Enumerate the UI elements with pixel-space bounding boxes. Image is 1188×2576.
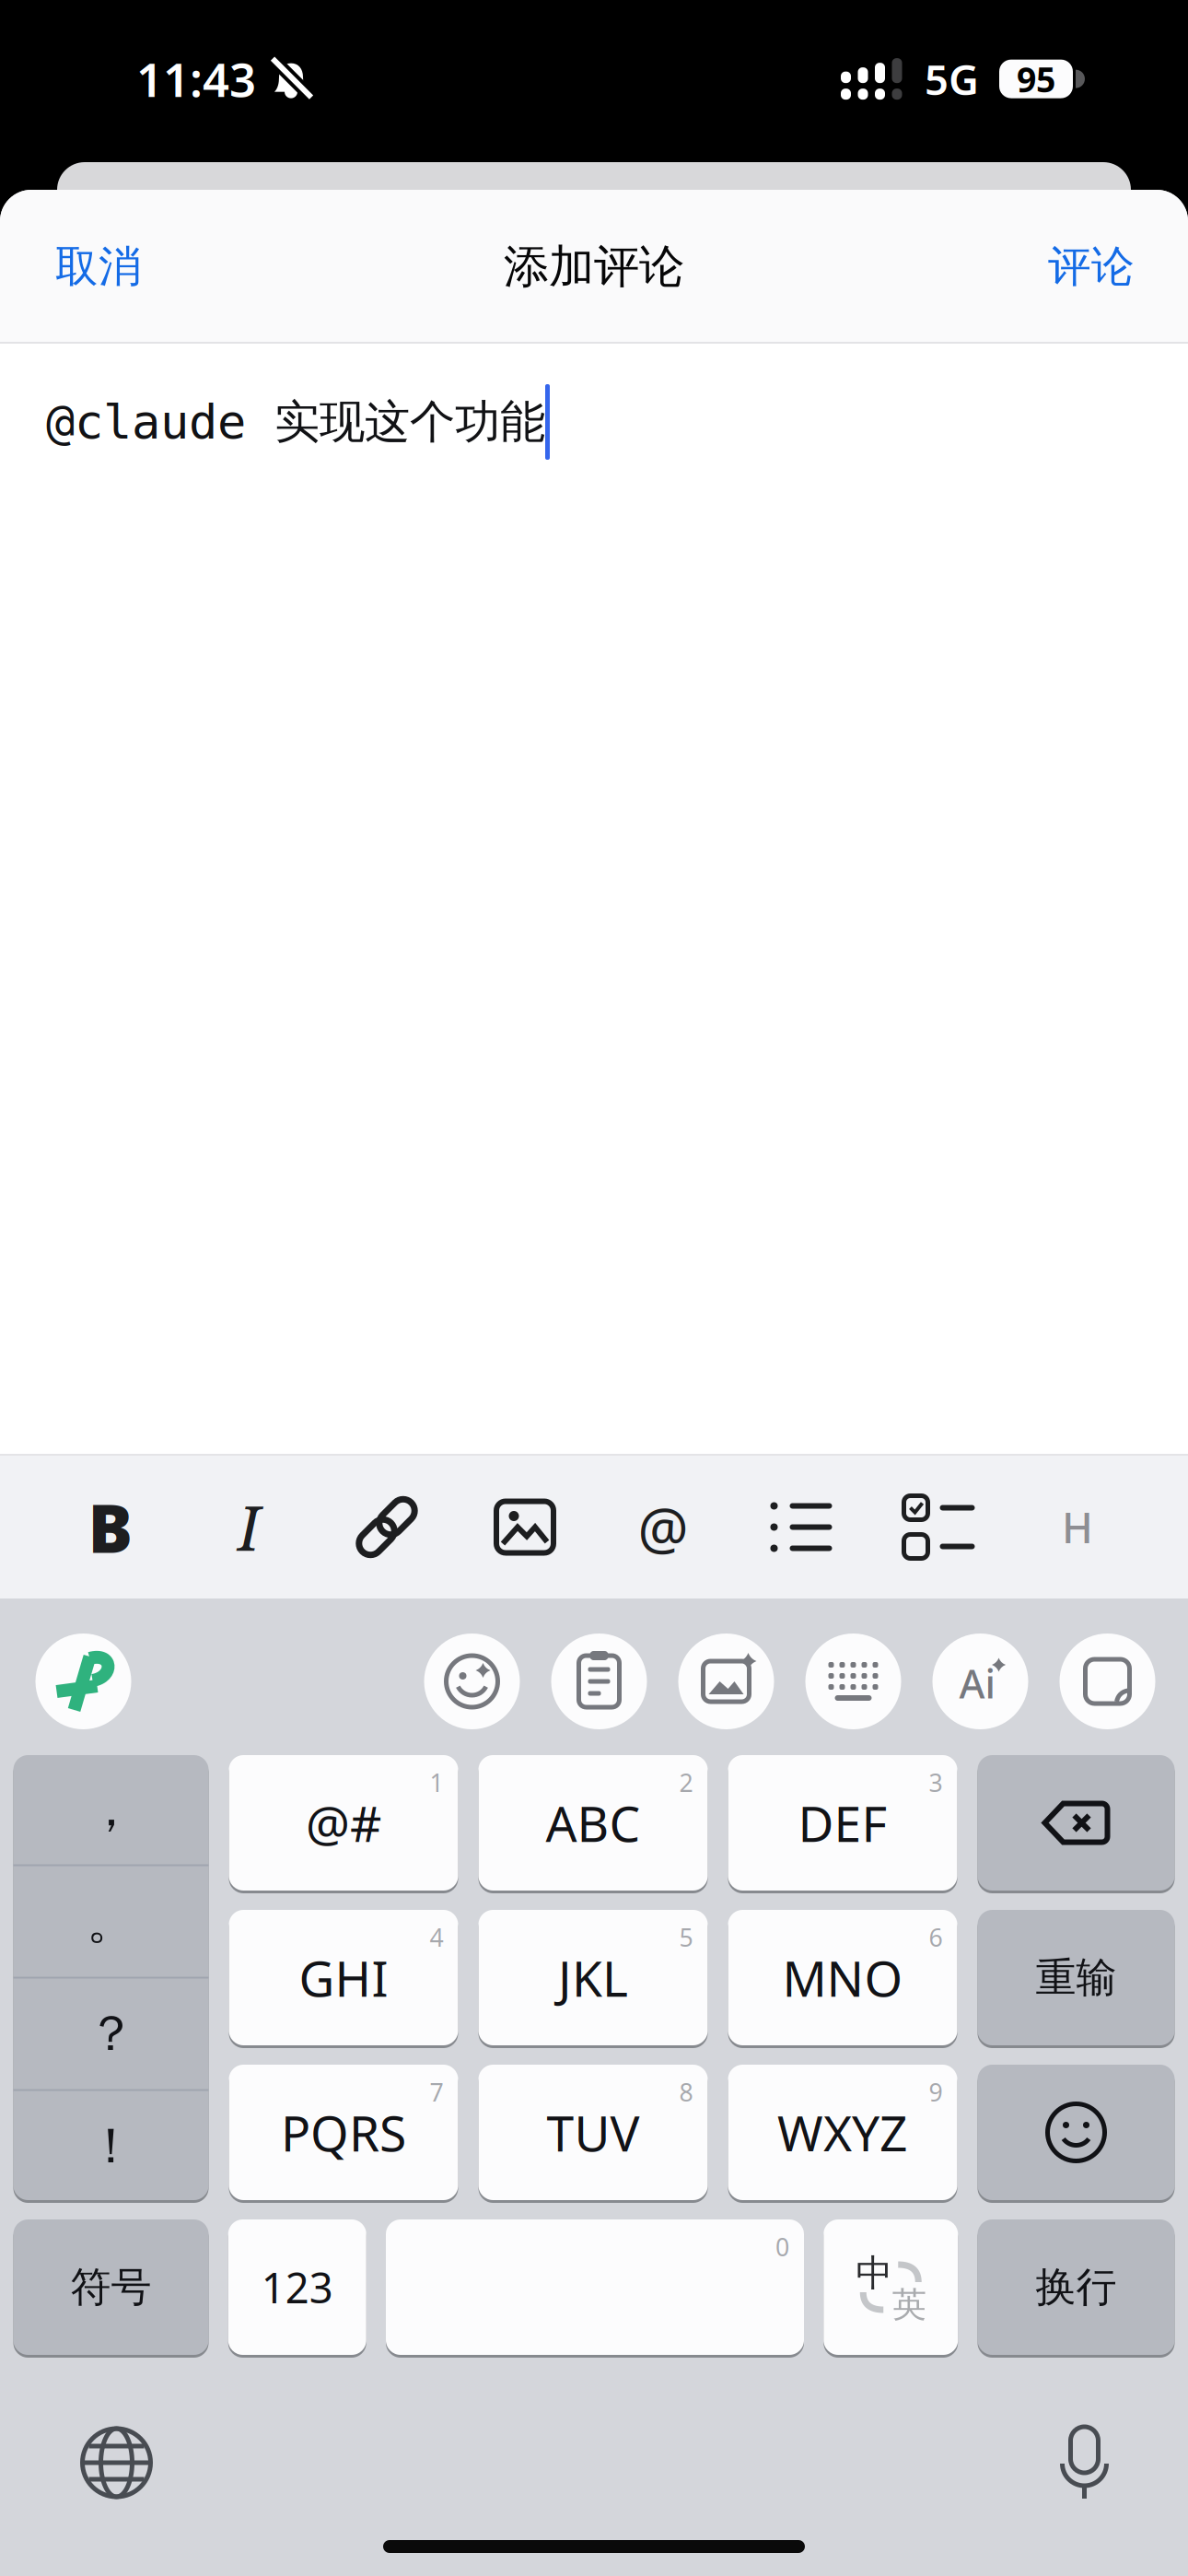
staticText: 3 (929, 1766, 943, 1799)
button[interactable]: 表情 (978, 2065, 1175, 2200)
staticText: 评论 (1048, 240, 1135, 293)
button[interactable]: 中英切换 (823, 2219, 958, 2355)
staticText: 2 (679, 1766, 693, 1799)
staticText: 符号 (70, 2262, 151, 2312)
button[interactable]: 评论 (1048, 240, 1135, 293)
button[interactable]: 剪贴板 (551, 1633, 647, 1729)
button[interactable]: AI (932, 1633, 1028, 1729)
button[interactable]: Bold (41, 1458, 180, 1596)
staticText: DEF (798, 1790, 887, 1855)
button[interactable]: JKL (478, 1910, 708, 2045)
staticText: 6 (929, 1921, 943, 1954)
button[interactable]: 取消 (55, 240, 142, 293)
staticText: @ (638, 1490, 688, 1565)
staticText: TUV (547, 2100, 640, 2165)
button[interactable]: 123 (228, 2219, 366, 2355)
staticText: 8 (679, 2076, 693, 2108)
staticText: JKL (558, 1945, 628, 2010)
staticText: I (238, 1485, 260, 1569)
staticText: 4 (430, 1921, 443, 1954)
staticText: PQRS (281, 2100, 406, 2165)
button[interactable]: WXYZ (728, 2065, 957, 2200)
button[interactable]: ？ (13, 1979, 209, 2089)
staticText: 5G (925, 51, 979, 107)
button[interactable]: ！ (13, 2091, 209, 2201)
staticText: @# (306, 1790, 381, 1855)
staticText: 取消 (55, 240, 142, 293)
staticText: 实现这个功能 (274, 394, 545, 450)
button[interactable]: 空格 (386, 2219, 804, 2355)
button[interactable]: Mention (594, 1458, 732, 1596)
staticText: 。 (87, 1891, 135, 1952)
button[interactable]: TUV (478, 2065, 708, 2200)
button[interactable]: ， (13, 1754, 209, 1864)
button[interactable]: Insert link (318, 1458, 456, 1596)
button[interactable]: 删除 (978, 1755, 1175, 1891)
staticText: 英 (892, 2284, 926, 2326)
button[interactable]: 。 (13, 1866, 209, 1977)
staticText: 重输 (1036, 1953, 1117, 2002)
staticText: ABC (546, 1790, 641, 1855)
button[interactable]: Task list (870, 1458, 1008, 1596)
staticText: 123 (261, 2259, 333, 2315)
button[interactable]: Italic (180, 1458, 318, 1596)
button[interactable]: GHI (229, 1910, 458, 2045)
staticText: ！ (87, 2116, 135, 2176)
staticText: 1 (430, 1766, 443, 1799)
staticText: 11:43 (136, 48, 256, 110)
staticText: 5 (679, 1921, 693, 1954)
staticText: H (1062, 1499, 1093, 1555)
button[interactable]: 键盘 (805, 1633, 901, 1729)
button[interactable]: 切换输入法 (82, 2429, 151, 2497)
staticText: 换行 (1036, 2262, 1117, 2312)
button[interactable]: 重输 (978, 1910, 1175, 2045)
staticText: GHI (299, 1945, 388, 2010)
staticText: 7 (430, 2076, 443, 2108)
button[interactable]: 符号 (13, 2219, 209, 2355)
button[interactable]: ABC (478, 1755, 708, 1891)
staticText: ， (87, 1779, 135, 1839)
button[interactable]: @# (229, 1755, 458, 1891)
button[interactable]: 输入法 (35, 1633, 131, 1729)
button[interactable]: 换行 (978, 2219, 1175, 2355)
staticText: B (88, 1483, 133, 1571)
staticText: @claude (46, 395, 274, 449)
button[interactable]: 图片 (678, 1633, 774, 1729)
button[interactable]: 浮窗 (1060, 1633, 1155, 1729)
button[interactable]: Insert image (456, 1458, 594, 1596)
staticText: WXYZ (777, 2100, 908, 2165)
staticText: 0 (775, 2231, 789, 2263)
staticText: Ai (959, 1657, 996, 1709)
staticText: ？ (87, 2004, 135, 2064)
button[interactable]: MNO (728, 1910, 957, 2045)
button[interactable]: DEF (728, 1755, 957, 1891)
staticText: MNO (782, 1945, 903, 2010)
button[interactable]: Bulleted list (732, 1458, 870, 1596)
button[interactable]: PQRS (229, 2065, 458, 2200)
button[interactable]: Heading (1008, 1458, 1147, 1596)
staticText: 中 (856, 2251, 893, 2296)
button[interactable]: 听写 (1060, 2425, 1109, 2500)
staticText: 95 (1017, 56, 1055, 102)
staticText: 添加评论 (504, 239, 684, 295)
staticText: 9 (929, 2076, 943, 2108)
button[interactable]: 表情 (424, 1633, 520, 1729)
